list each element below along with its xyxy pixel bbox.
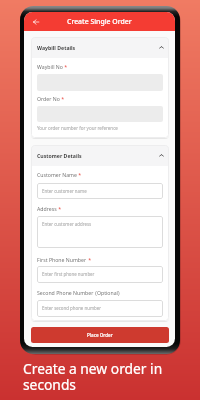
staticText: Your order number for your reference (37, 125, 118, 131)
staticText: Waybill No (37, 63, 63, 70)
staticText: * (77, 171, 82, 178)
staticText: * (60, 95, 65, 102)
staticText: * (57, 205, 62, 212)
staticText: Enter second phone number (42, 305, 101, 311)
button[interactable]: Back (24, 12, 47, 31)
staticText: (Optional) (94, 289, 120, 296)
staticText: Customer Name (37, 171, 77, 178)
staticText: Waybill Details (37, 44, 76, 51)
staticText: Enter customer name (42, 188, 87, 194)
button[interactable]: Customer Details (31, 145, 169, 166)
staticText: Create a new order in seconds (23, 359, 168, 394)
button[interactable]: Waybill Details (31, 37, 169, 58)
staticText: * (63, 63, 68, 70)
staticText: Address (37, 205, 57, 212)
staticText: First Phone Number (37, 256, 87, 263)
staticText: Enter customer address (42, 221, 92, 227)
button[interactable]: Enter first phone number (37, 266, 163, 283)
button[interactable]: Enter customer name (37, 183, 163, 199)
button[interactable]: Enter customer address (37, 216, 163, 248)
staticText: Customer Details (37, 152, 82, 159)
staticText: Second Phone Number (37, 289, 94, 296)
button[interactable]: Place Order (31, 327, 169, 343)
staticText: Order No (37, 95, 60, 102)
button[interactable]: Enter second phone number (37, 300, 163, 317)
staticText: Place Order (87, 332, 113, 338)
staticText: Enter first phone number (42, 271, 95, 277)
staticText: * (87, 256, 92, 263)
staticText: Create Single Order (67, 17, 132, 26)
